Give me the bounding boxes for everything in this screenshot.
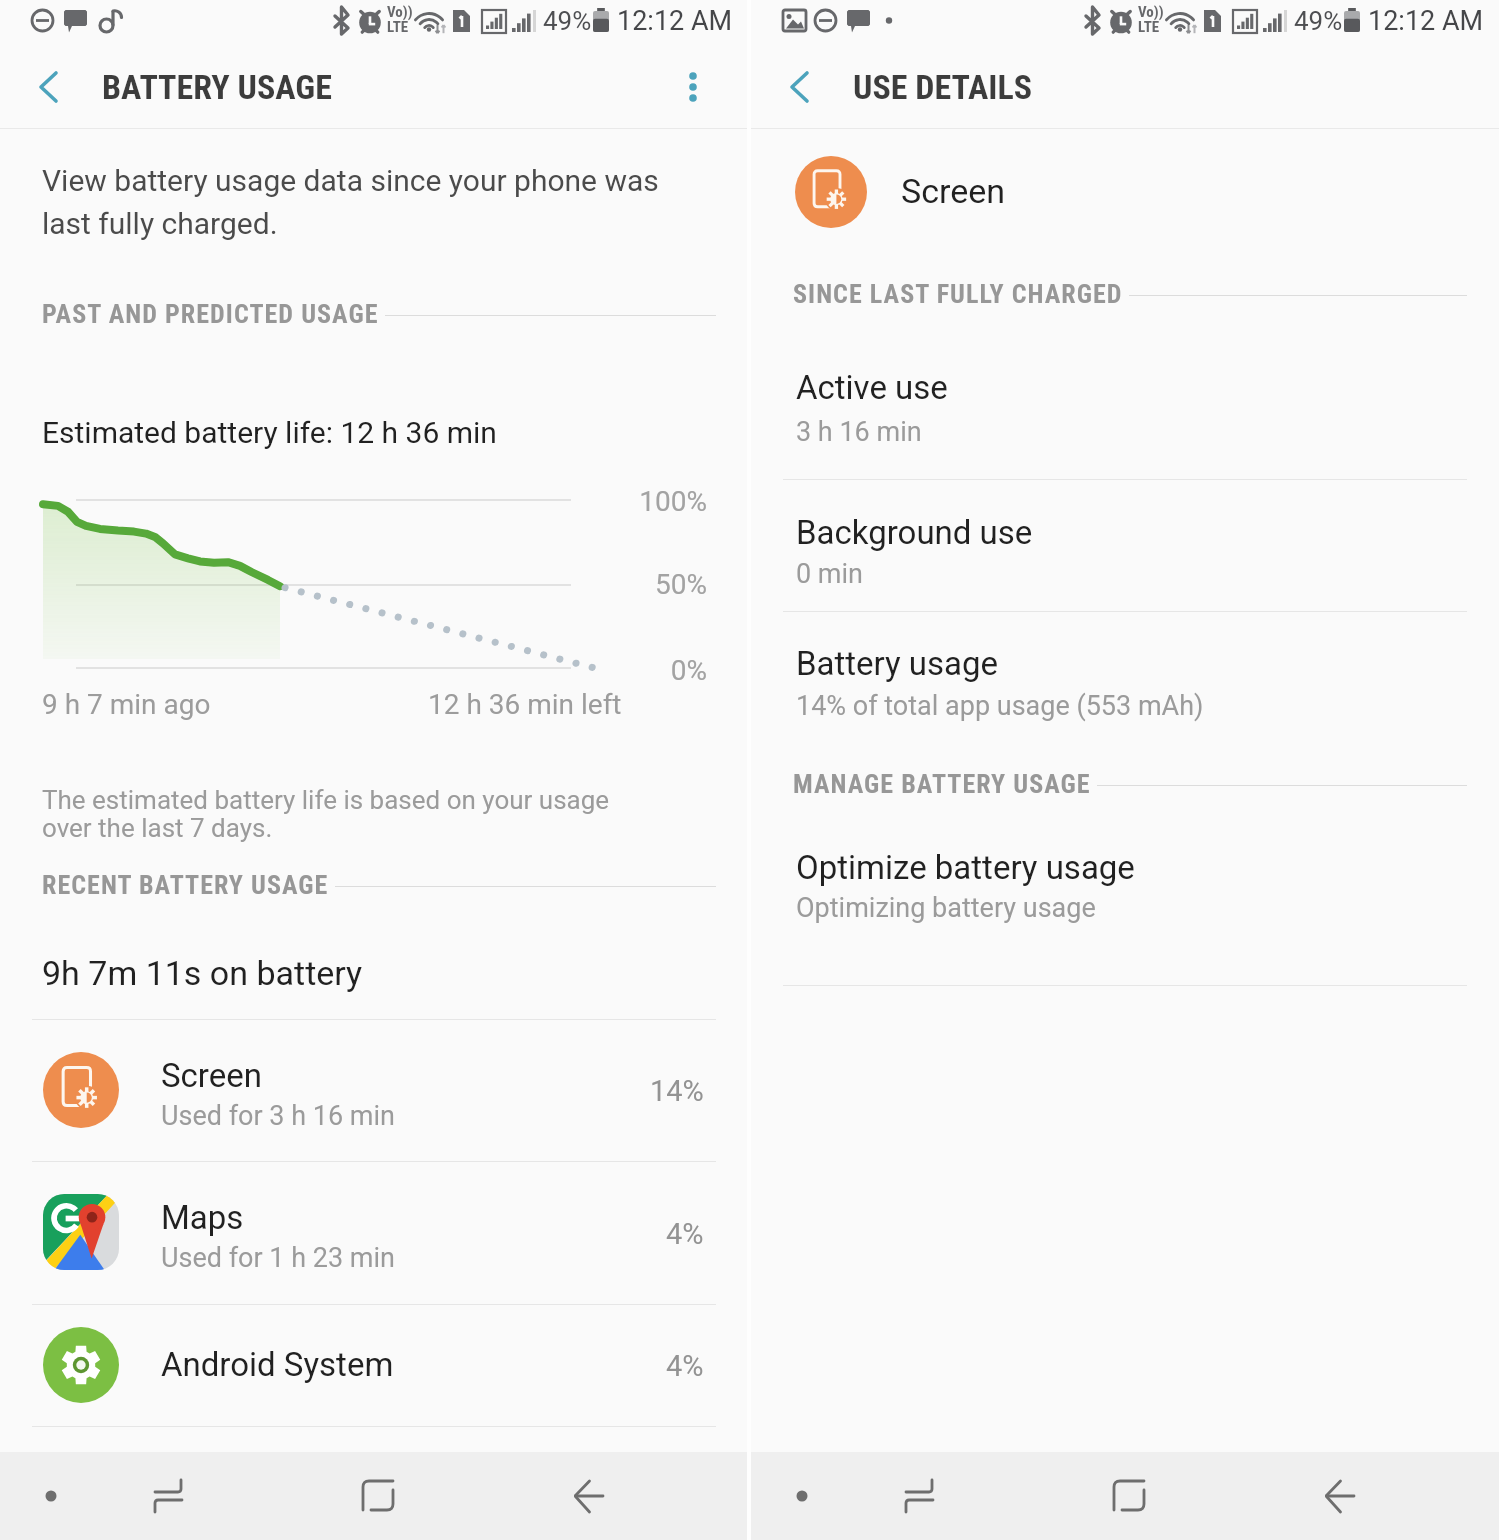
staticText: 12 h 36 min left (428, 688, 622, 721)
staticText: 14% (650, 1074, 704, 1108)
staticText: 49% (543, 6, 592, 36)
staticText: Active use (796, 368, 948, 407)
staticText: SINCE LAST FULLY CHARGED (793, 279, 1123, 309)
button[interactable]: Show navigation bar (21, 1466, 81, 1526)
staticText: LTE (387, 18, 409, 36)
button[interactable]: Show navigation bar (772, 1466, 832, 1526)
button[interactable]: Android System (0, 1304, 747, 1426)
button[interactable]: Back (1295, 1456, 1385, 1536)
staticText: View battery usage data since your phone… (42, 163, 659, 198)
staticText: PAST AND PREDICTED USAGE (42, 299, 379, 329)
staticText: Android System (161, 1345, 394, 1384)
staticText: Optimize battery usage (796, 848, 1135, 887)
button[interactable]: Maps (0, 1161, 747, 1304)
button[interactable]: Navigate up (767, 55, 835, 123)
staticText: 9 h 7 min ago (42, 688, 211, 721)
staticText: Optimizing battery usage (796, 892, 1096, 924)
button[interactable]: More options (661, 55, 725, 119)
staticText: LTE (1138, 18, 1160, 36)
staticText: 100% (547, 485, 707, 518)
button[interactable]: Home (333, 1456, 423, 1536)
staticText: Used for 3 h 16 min (161, 1100, 395, 1132)
button[interactable]: Navigate up (16, 55, 84, 123)
button[interactable]: Active use (751, 350, 1499, 479)
staticText: 9h 7m 11s on battery (42, 953, 363, 993)
button[interactable]: Back (544, 1456, 634, 1536)
staticText: 50% (547, 568, 707, 601)
staticText: 49% (1294, 6, 1343, 36)
button[interactable]: Optimize battery usage (751, 830, 1499, 985)
staticText: 3 h 16 min (796, 416, 922, 448)
button[interactable]: Recents (124, 1456, 214, 1536)
staticText: Screen (901, 171, 1006, 211)
staticText: BATTERY USAGE (102, 67, 332, 107)
button[interactable]: Recents (875, 1456, 965, 1536)
staticText: Vo)) (387, 3, 413, 21)
staticText: USE DETAILS (853, 67, 1033, 107)
staticText: last fully charged. (42, 206, 278, 241)
staticText: Maps (161, 1198, 244, 1237)
staticText: MANAGE BATTERY USAGE (793, 769, 1091, 799)
button[interactable]: Battery usage (751, 611, 1499, 745)
staticText: Estimated battery life: 12 h 36 min (42, 415, 497, 450)
button[interactable]: Home (1084, 1456, 1174, 1536)
staticText: 0 min (796, 558, 864, 590)
staticText: 4% (666, 1349, 704, 1383)
staticText: 0% (547, 654, 707, 687)
staticText: The estimated battery life is based on y… (42, 785, 610, 815)
staticText: Screen (161, 1056, 262, 1095)
staticText: 12:12 AM (1368, 5, 1484, 37)
staticText: Used for 1 h 23 min (161, 1242, 395, 1274)
staticText: Battery usage (796, 644, 999, 683)
staticText: 12:12 AM (617, 5, 733, 37)
staticText: over the last 7 days. (42, 813, 273, 843)
staticText: 4% (666, 1217, 704, 1251)
button[interactable]: Background use (751, 479, 1499, 611)
button[interactable]: Screen (0, 1019, 747, 1161)
staticText: 14% of total app usage (553 mAh) (796, 690, 1204, 722)
staticText: Background use (796, 513, 1033, 552)
button[interactable]: Screen (785, 145, 1205, 243)
staticText: Vo)) (1138, 3, 1164, 21)
staticText: RECENT BATTERY USAGE (42, 870, 329, 900)
